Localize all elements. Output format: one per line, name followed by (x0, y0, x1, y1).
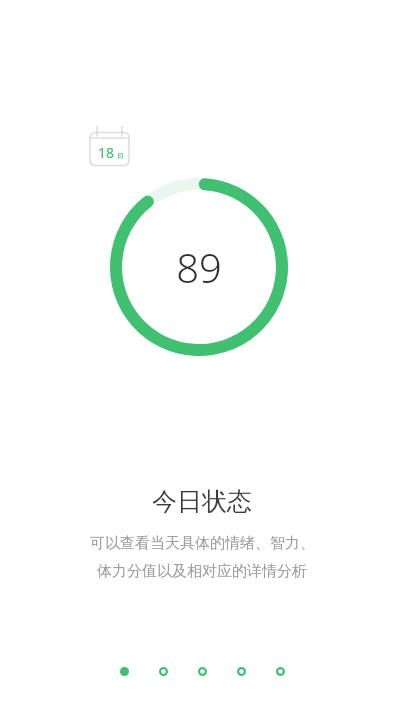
button[interactable]: Page 2 (155, 663, 171, 679)
staticText: 可以查看当天具体的情绪、智力、 (90, 534, 315, 553)
staticText: 日 (117, 151, 124, 160)
button[interactable]: Page 3 (194, 663, 210, 679)
staticText: 18 (98, 143, 115, 162)
button[interactable]: Page 4 (233, 663, 249, 679)
button[interactable]: Page 5 (272, 663, 288, 679)
staticText: 89 (176, 240, 222, 294)
button[interactable]: Calendar, day 18 (87, 125, 132, 168)
staticText: 体力分值以及相对应的详情分析 (97, 562, 307, 581)
button[interactable]: Page 1 (116, 663, 132, 679)
staticText: 今日状态 (152, 486, 252, 517)
